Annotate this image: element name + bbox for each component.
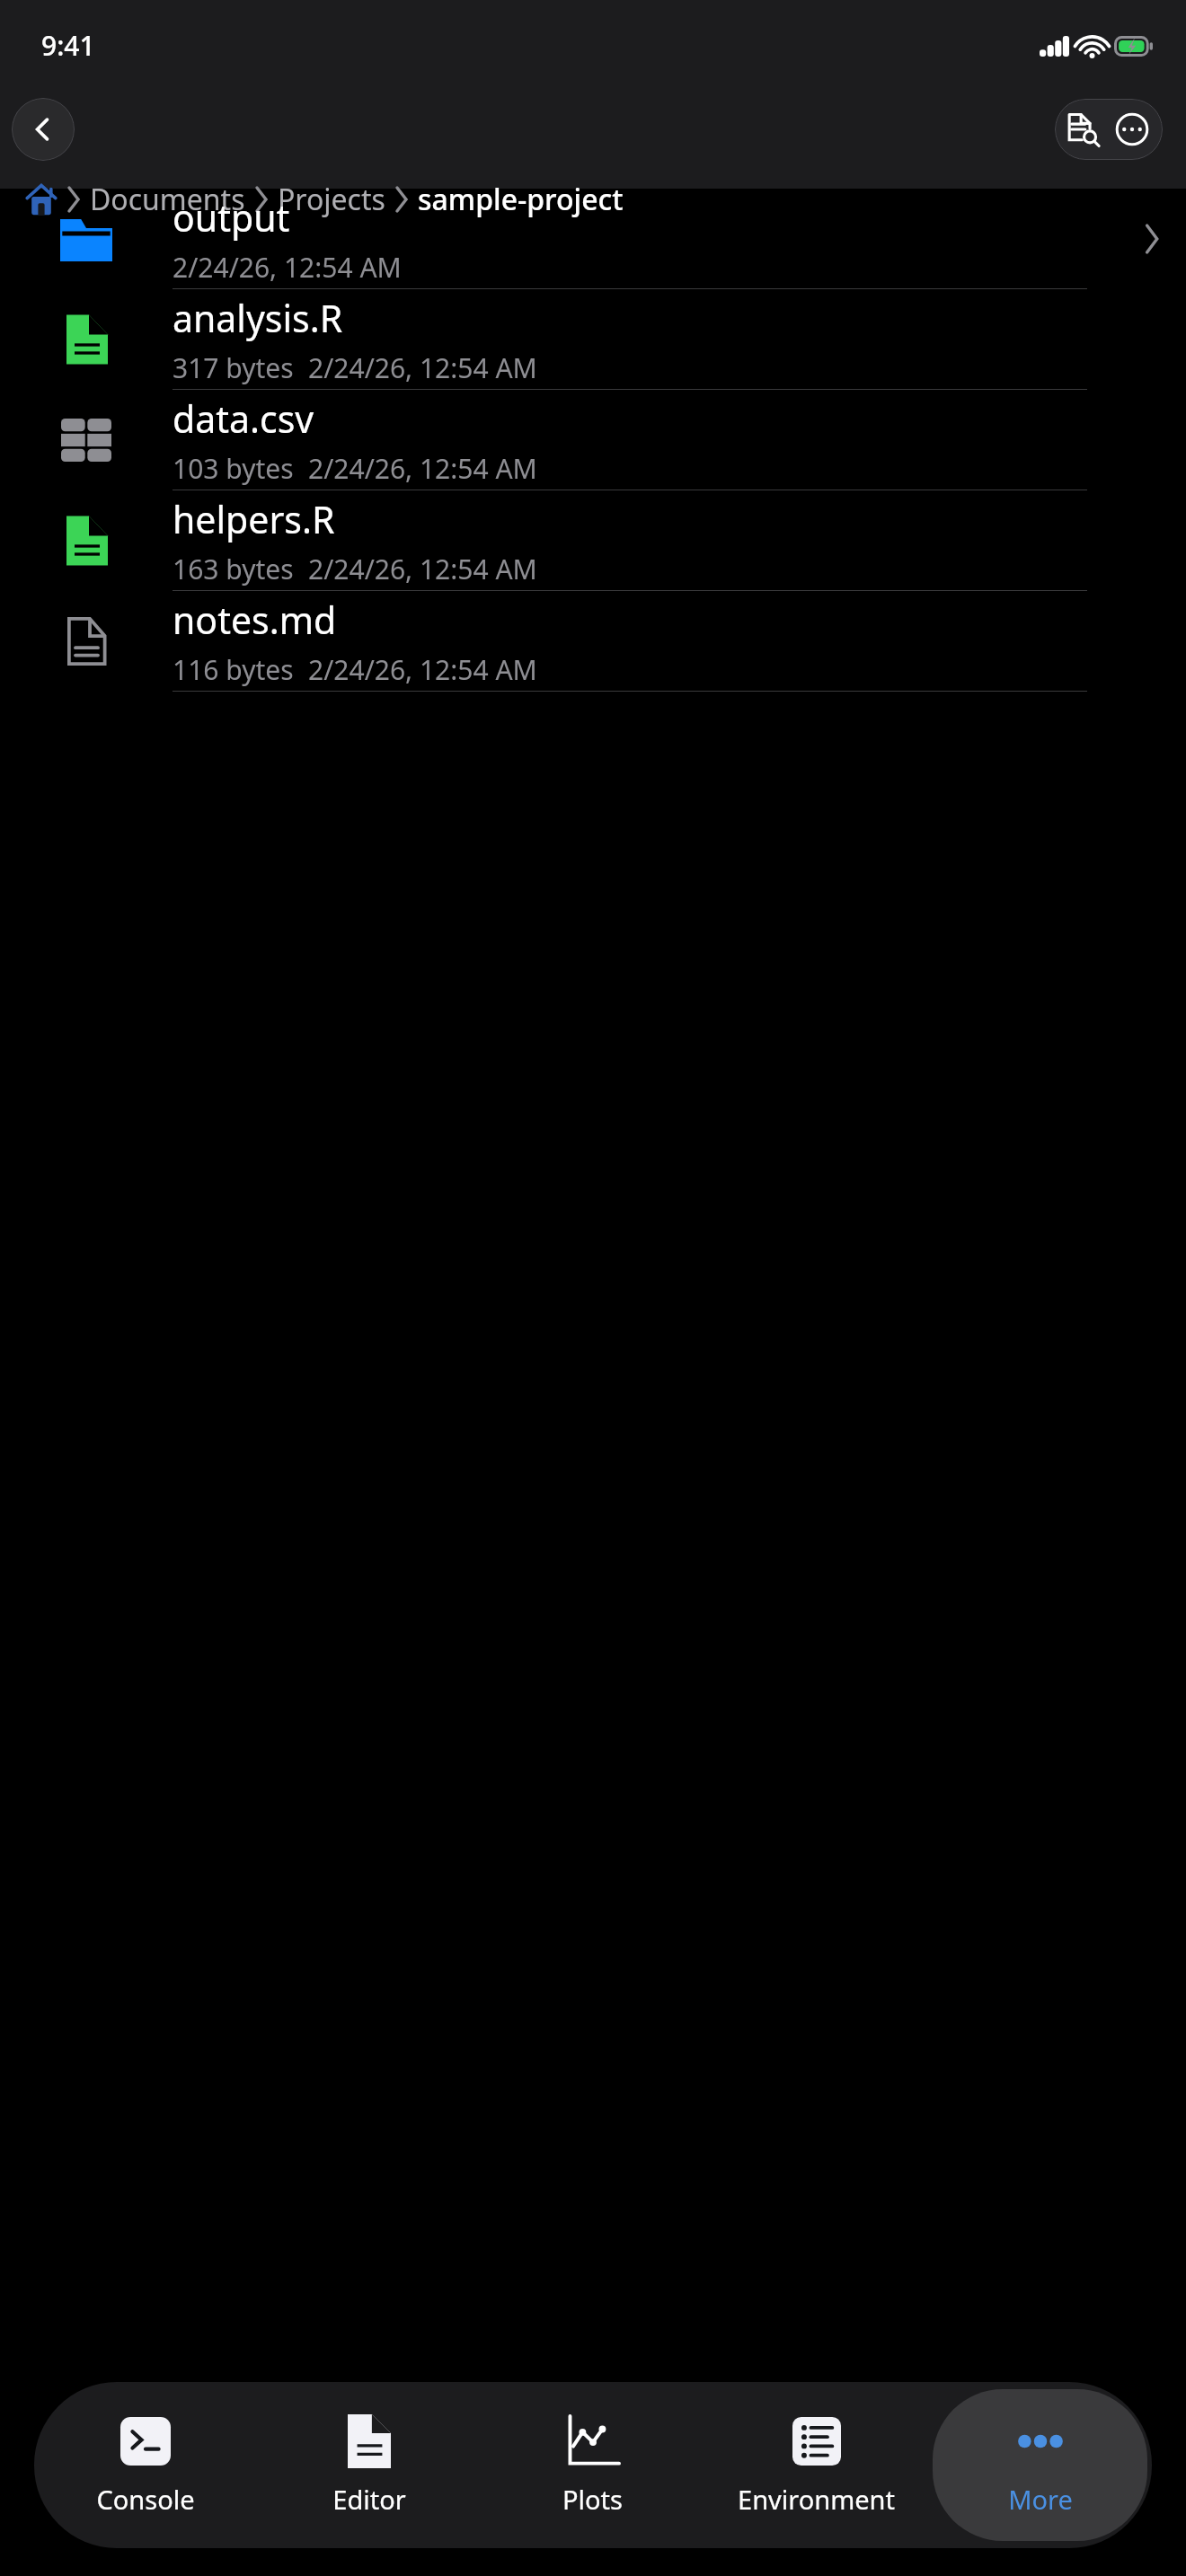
staticText: 2/24/26, 12:54 AM	[308, 551, 537, 587]
button[interactable]: Environment	[709, 2389, 924, 2541]
staticText: helpers.R	[173, 494, 335, 544]
staticText: analysis.R	[173, 293, 343, 343]
staticText: Editor	[332, 2482, 406, 2517]
staticText: Console	[96, 2482, 195, 2517]
button[interactable]: Plots	[485, 2389, 700, 2541]
button[interactable]: data.csv	[0, 390, 1186, 490]
button[interactable]: Back	[12, 98, 75, 161]
button[interactable]: More options	[1113, 99, 1151, 160]
staticText: 103 bytes	[173, 450, 294, 487]
button[interactable]: More	[933, 2389, 1147, 2541]
staticText: 2/24/26, 12:54 AM	[308, 349, 537, 386]
staticText: data.csv	[173, 393, 314, 444]
button[interactable]: Search in document	[1067, 99, 1104, 160]
button[interactable]: analysis.R	[0, 289, 1186, 390]
button[interactable]: Editor	[261, 2389, 476, 2541]
staticText: output	[173, 192, 290, 243]
button[interactable]: Documents	[90, 180, 245, 219]
staticText: More	[1008, 2482, 1073, 2517]
button[interactable]: Home	[25, 183, 58, 216]
button[interactable]: notes.md	[0, 591, 1186, 692]
staticText: 317 bytes	[173, 349, 294, 386]
staticText: Environment	[738, 2482, 895, 2517]
staticText: 163 bytes	[173, 551, 294, 587]
staticText: notes.md	[173, 595, 337, 645]
button[interactable]: Console	[39, 2389, 252, 2541]
staticText: 2/24/26, 12:54 AM	[308, 651, 537, 688]
staticText: sample-project	[418, 180, 624, 219]
button[interactable]: helpers.R	[0, 490, 1186, 591]
staticText: 2/24/26, 12:54 AM	[173, 249, 402, 286]
staticText: 116 bytes	[173, 651, 294, 688]
staticText: 2/24/26, 12:54 AM	[308, 450, 537, 487]
staticText: 9:41	[41, 27, 95, 64]
button[interactable]: output	[0, 189, 1186, 289]
button[interactable]: Projects	[278, 180, 385, 219]
staticText: Plots	[562, 2482, 623, 2517]
